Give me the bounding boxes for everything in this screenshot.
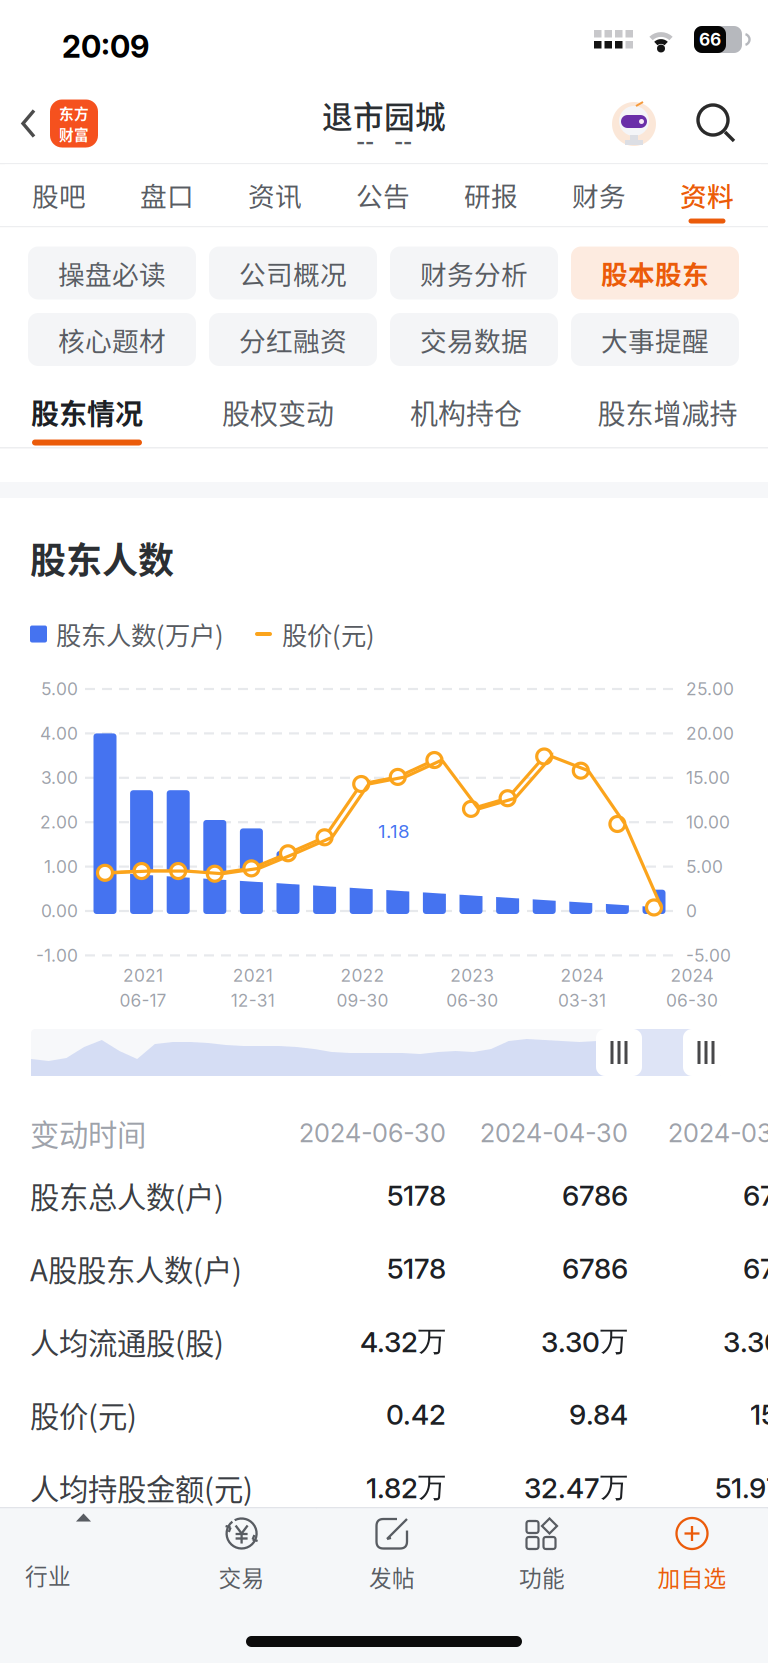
staticText: 9.84 [569, 1398, 628, 1431]
button[interactable]: 分红融资 [209, 313, 377, 366]
staticText: 1.00 [44, 856, 78, 877]
staticText: -1.00 [36, 945, 78, 966]
staticText: 大事提醒 [601, 320, 709, 359]
staticText: 交易数据 [420, 320, 528, 359]
button[interactable]: 资讯 [221, 164, 329, 228]
staticText: 2021 [233, 965, 273, 986]
staticText: 10.00 [686, 812, 730, 833]
button[interactable]: 范围终点 [683, 1029, 729, 1076]
button[interactable]: 交易数据 [390, 313, 558, 366]
staticText: 0.00 [41, 900, 78, 921]
staticText: 研报 [464, 175, 518, 214]
button[interactable]: 操盘必读 [28, 246, 196, 299]
staticText: 资料 [680, 175, 734, 214]
button[interactable]: 搜索 [696, 103, 737, 144]
staticText: 20.00 [686, 723, 734, 744]
button[interactable]: 交易 [167, 1508, 317, 1603]
button[interactable]: 财务分析 [390, 246, 558, 299]
staticText: 加自选 [657, 1560, 726, 1593]
button[interactable]: 公司概况 [209, 246, 377, 299]
button[interactable]: 股权变动 [202, 372, 354, 447]
staticText: 6786 [562, 1179, 628, 1212]
button[interactable]: 功能 [467, 1508, 617, 1603]
button[interactable]: 资料 [653, 164, 761, 228]
staticText: 发帖 [369, 1560, 415, 1593]
staticText: 2021 [123, 965, 163, 986]
staticText: -5.00 [686, 945, 731, 966]
staticText: 2024 [670, 965, 713, 986]
staticText: 股东总人数(户) [30, 1174, 224, 1217]
staticText: 股东情况 [31, 392, 143, 432]
staticText: 20:09 [62, 28, 149, 65]
staticText: 股权变动 [222, 392, 334, 432]
staticText: 核心题材 [58, 320, 166, 359]
staticText: 5.00 [41, 678, 78, 699]
button[interactable]: 盘口 [113, 164, 221, 228]
button[interactable]: 公告 [329, 164, 437, 228]
staticText: 2023 [450, 965, 494, 986]
staticText: -- -- [356, 130, 412, 154]
button[interactable]: AI 助手 [612, 102, 656, 146]
button[interactable]: 股本股东 [571, 246, 739, 299]
button[interactable]: 返回 东方财富 [0, 84, 112, 163]
button[interactable]: 财务 [545, 164, 653, 228]
staticText: A股股东人数(户) [30, 1247, 242, 1290]
staticText: 66 [699, 29, 721, 50]
staticText: 机构持仓 [410, 392, 522, 432]
button[interactable]: 加自选 [617, 1508, 767, 1603]
staticText: 盘口 [140, 175, 194, 214]
staticText: 4.32万 [360, 1324, 446, 1359]
staticText: 股本股东 [601, 254, 709, 292]
staticText: 6786 [562, 1252, 628, 1285]
staticText: 03-31 [558, 990, 606, 1011]
staticText: 25.00 [686, 678, 734, 699]
staticText: 2022 [340, 965, 384, 986]
staticText: 6734 [743, 1252, 768, 1285]
staticText: 3.00 [41, 767, 78, 788]
button[interactable]: 发帖 [317, 1508, 467, 1603]
staticText: 5178 [387, 1252, 446, 1285]
staticText: 公告 [356, 175, 410, 214]
staticText: 0.42 [386, 1398, 446, 1431]
staticText: 3.30万 [723, 1324, 768, 1359]
button[interactable]: 股东情况 [11, 372, 163, 447]
button[interactable]: 范围起点 [596, 1029, 642, 1076]
button[interactable]: 大事提醒 [571, 313, 739, 366]
staticText: 股价(元) [282, 616, 375, 652]
staticText: 0 [686, 900, 697, 921]
button[interactable]: 股东增减持 [577, 372, 757, 447]
button[interactable]: 研报 [437, 164, 545, 228]
staticText: 32.47万 [524, 1470, 628, 1505]
staticText: 3.30万 [541, 1324, 628, 1359]
staticText: 公司概况 [239, 254, 347, 292]
staticText: 交易 [219, 1560, 265, 1593]
staticText: 09-30 [336, 990, 388, 1011]
button[interactable]: 机构持仓 [390, 372, 542, 447]
staticText: 财富 [59, 123, 89, 145]
staticText: 股东人数 [30, 532, 174, 584]
button[interactable]: 行业 [0, 1508, 130, 1603]
staticText: 股东人数(万户) [56, 616, 224, 652]
staticText: 4.00 [40, 723, 78, 744]
staticText: 行业 [25, 1558, 71, 1591]
staticText: 人均持股金额(元) [30, 1466, 253, 1509]
staticText: 股吧 [32, 175, 86, 214]
staticText: 06-30 [666, 990, 718, 1011]
staticText: 分红融资 [239, 320, 347, 359]
staticText: 财务 [572, 175, 626, 214]
staticText: 2024 [561, 965, 604, 986]
staticText: 变动时间 [30, 1112, 146, 1154]
button[interactable]: 股吧 [5, 164, 113, 228]
staticText: 人均流通股(股) [30, 1320, 224, 1363]
staticText: 股价(元) [30, 1393, 137, 1436]
staticText: 股东增减持 [597, 392, 737, 432]
staticText: 5.00 [686, 856, 723, 877]
staticText: 资讯 [248, 175, 302, 214]
staticText: 2024-03-31 [668, 1118, 768, 1148]
staticText: 51.97万 [715, 1470, 768, 1505]
button[interactable]: 核心题材 [28, 313, 196, 366]
staticText: 1.82万 [366, 1470, 446, 1505]
staticText: 财务分析 [420, 254, 528, 292]
staticText: 15.12 [750, 1398, 768, 1431]
staticText: 5178 [387, 1179, 446, 1212]
